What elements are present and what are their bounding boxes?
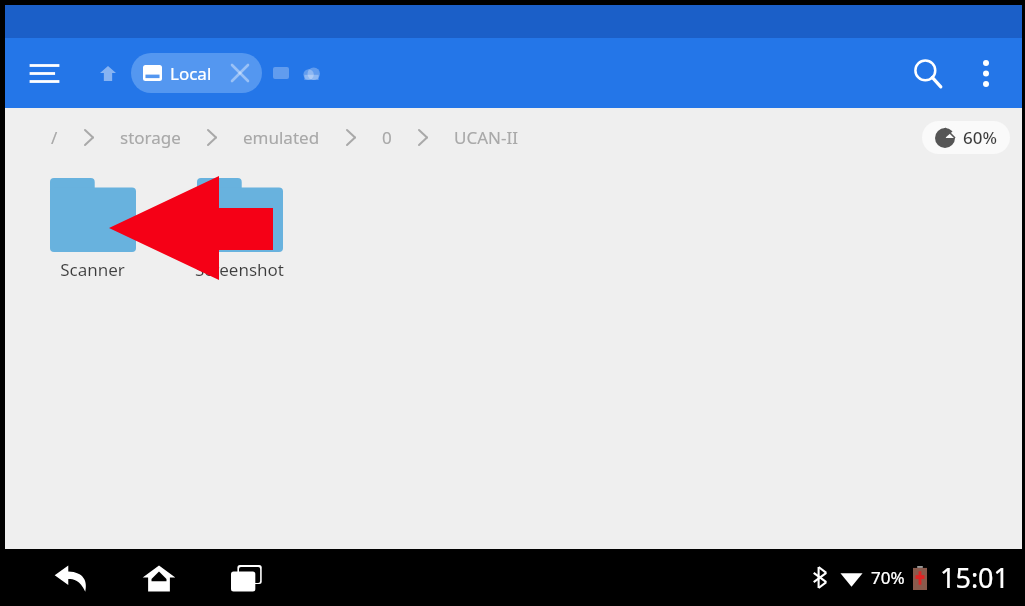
button[interactable]: emulated [243, 118, 320, 157]
staticText: Scanner [60, 258, 125, 281]
staticText: 0 [382, 126, 392, 149]
button[interactable]: Local [131, 53, 262, 93]
button[interactable]: Home [131, 550, 187, 606]
button[interactable]: UCAN-II [454, 118, 518, 157]
button[interactable]: Back [43, 550, 99, 606]
button[interactable]: / [51, 118, 58, 157]
button[interactable]: Scanner [19, 178, 166, 281]
staticText: 70% [871, 566, 905, 589]
staticText: Local [170, 62, 212, 85]
staticText: 15:01 [940, 559, 1010, 596]
button[interactable]: More options [964, 51, 1008, 95]
staticText: emulated [243, 126, 320, 149]
staticText: UCAN-II [454, 126, 518, 149]
staticText: / [51, 126, 58, 149]
button[interactable]: Search [902, 48, 952, 98]
button[interactable]: Close tab [228, 61, 252, 85]
staticText: 60% [963, 126, 997, 149]
staticText: storage [120, 126, 181, 149]
button[interactable]: Menu [21, 50, 67, 96]
button[interactable]: storage [120, 118, 181, 157]
staticText: Screenshot [195, 258, 284, 281]
button[interactable]: 60% [922, 121, 1010, 154]
button[interactable]: 0 [382, 118, 392, 157]
button[interactable]: Home folder [93, 58, 123, 88]
button[interactable]: Screenshot [166, 178, 313, 281]
button[interactable]: Recent apps [219, 550, 275, 606]
